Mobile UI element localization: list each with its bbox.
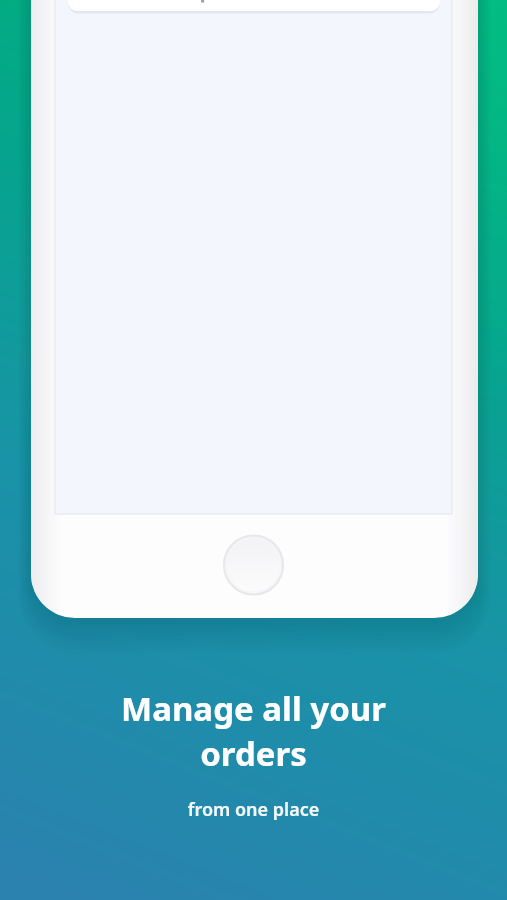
- staticText: Manage all your orders: [24, 686, 483, 775]
- button[interactable]: Manage all your orders: [24, 686, 483, 822]
- button[interactable]: Home: [224, 535, 283, 594]
- staticText: from one place: [24, 797, 483, 822]
